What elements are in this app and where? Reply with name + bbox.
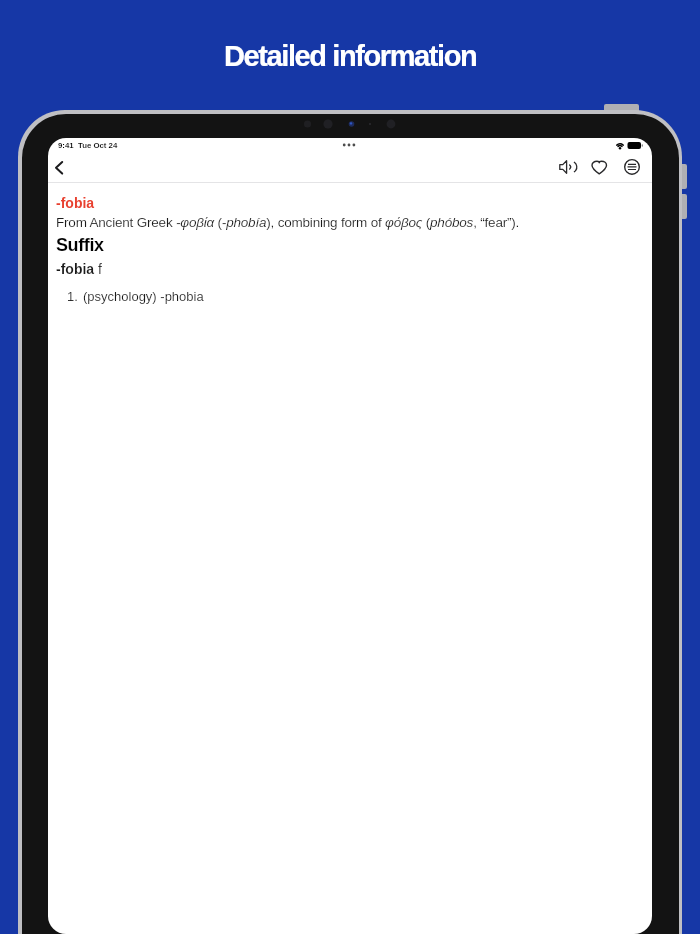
button[interactable]: [50, 161, 74, 185]
button[interactable]: [622, 157, 642, 177]
staticText: 9:41: [58, 141, 74, 150]
staticText: Detailed information: [224, 40, 477, 72]
button[interactable]: [590, 158, 610, 178]
staticText: -fobia f: [56, 261, 102, 277]
staticText: -fobia: [56, 195, 95, 211]
staticText: 1.: [67, 289, 78, 304]
button[interactable]: [556, 157, 580, 177]
staticText: From Ancient Greek -φοβία (-phobía), com…: [56, 215, 520, 230]
staticText: Tue Oct 24: [78, 141, 118, 150]
staticText: (psychology) -phobia: [83, 289, 204, 304]
staticText: Suffix: [56, 235, 104, 255]
